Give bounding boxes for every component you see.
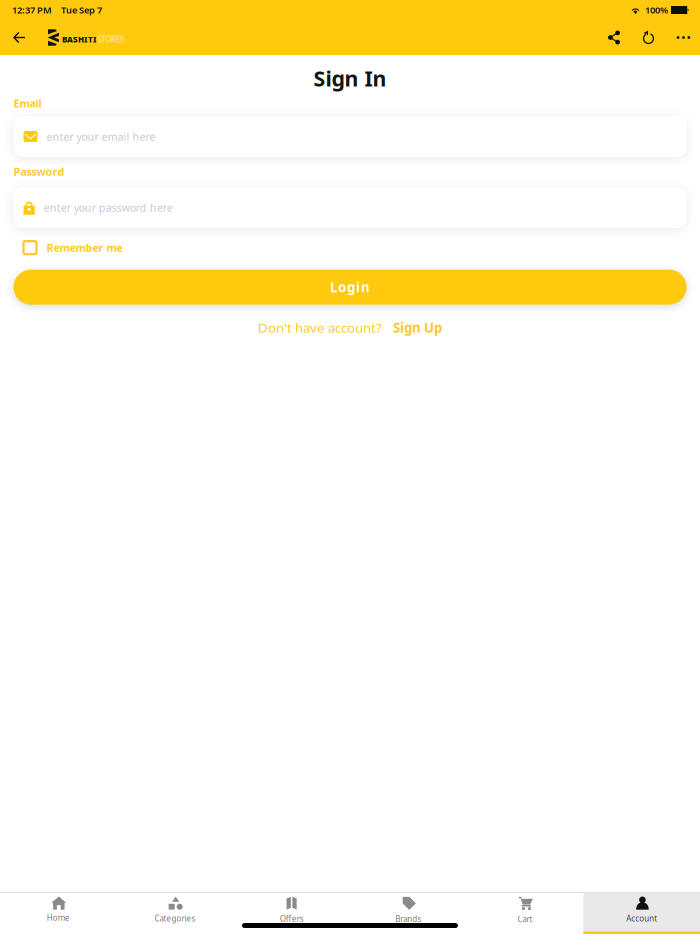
button[interactable]: Categories bbox=[117, 893, 233, 934]
staticText: Home bbox=[47, 912, 70, 923]
staticText: 12:37 PM bbox=[12, 4, 52, 16]
button[interactable]: Login bbox=[13, 270, 686, 305]
button[interactable]: Cart bbox=[467, 893, 583, 934]
button[interactable]: More bbox=[666, 20, 700, 55]
button[interactable]: Sign Up bbox=[393, 319, 442, 336]
staticText: BASHITI bbox=[62, 34, 97, 45]
staticText: Account bbox=[626, 913, 657, 924]
button[interactable]: Account bbox=[583, 893, 700, 934]
button[interactable]: Back bbox=[0, 20, 48, 55]
button[interactable]: Brands bbox=[350, 893, 467, 934]
staticText: Remember me bbox=[46, 241, 122, 255]
button[interactable]: enter your password here bbox=[13, 187, 686, 228]
staticText: Login bbox=[330, 278, 370, 296]
staticText: enter your email here bbox=[46, 129, 155, 144]
staticText: Don't have account? bbox=[258, 319, 382, 336]
staticText: Sign Up bbox=[393, 319, 442, 336]
staticText: Email bbox=[13, 96, 41, 110]
staticText: Sign In bbox=[313, 64, 386, 92]
button[interactable]: Refresh bbox=[631, 20, 666, 55]
staticText: Y O U S E F bbox=[62, 30, 81, 35]
button[interactable]: enter your email here bbox=[13, 116, 686, 157]
staticText: enter your password here bbox=[44, 201, 173, 215]
button[interactable]: Home bbox=[0, 893, 117, 934]
button[interactable]: Share bbox=[597, 20, 631, 55]
button[interactable]: Offers bbox=[233, 893, 350, 934]
staticText: Password bbox=[13, 164, 64, 179]
staticText: Tue Sep 7 bbox=[61, 4, 102, 16]
staticText: Categories bbox=[154, 913, 195, 924]
staticText: Offers bbox=[280, 913, 304, 924]
staticText: Brands bbox=[395, 913, 421, 924]
staticText: Cart bbox=[517, 914, 532, 924]
button[interactable]: Remember me bbox=[13, 241, 686, 254]
staticText: 100% bbox=[645, 4, 668, 16]
staticText: STORES bbox=[97, 34, 124, 45]
